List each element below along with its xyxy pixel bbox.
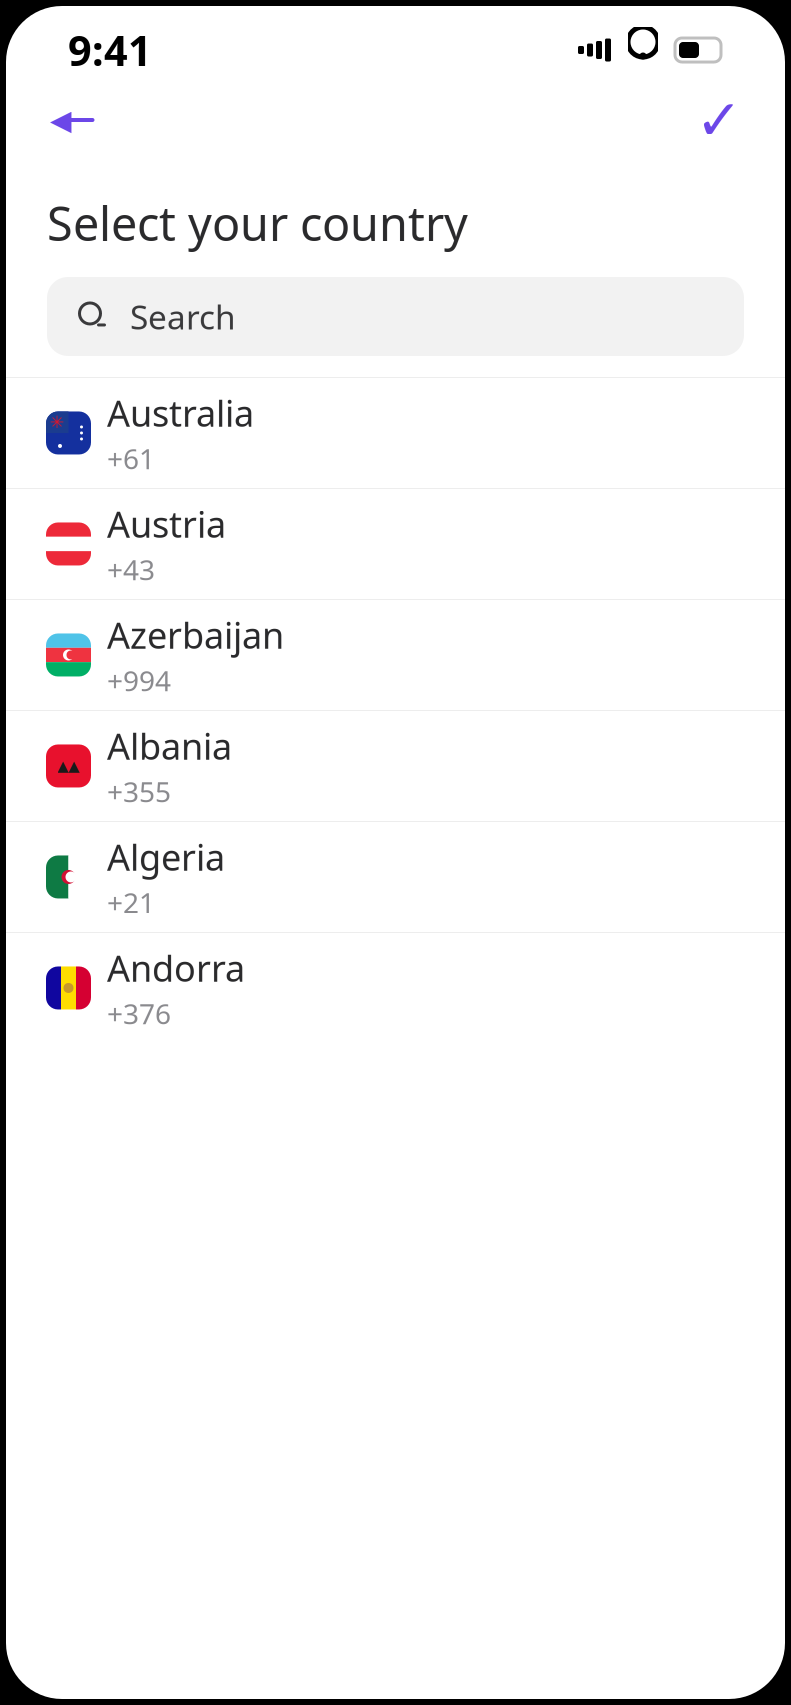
- button[interactable]: Confirm: [689, 94, 749, 146]
- staticText: Algeria: [107, 833, 225, 881]
- staticText: Andorra: [107, 944, 245, 992]
- button[interactable]: Austria: [6, 489, 785, 600]
- button[interactable]: ✳: [6, 378, 785, 489]
- button[interactable]: Back: [42, 94, 106, 146]
- staticText: ✳: [50, 412, 65, 432]
- staticText: Austria: [107, 500, 226, 548]
- staticText: Azerbaijan: [107, 611, 284, 659]
- staticText: +61: [107, 440, 155, 477]
- button[interactable]: Algeria: [6, 822, 785, 933]
- button[interactable]: Azerbaijan: [6, 600, 785, 711]
- staticText: +355: [107, 773, 171, 810]
- staticText: Search: [130, 294, 236, 339]
- staticText: Albania: [107, 722, 232, 770]
- staticText: ✓: [695, 88, 742, 152]
- staticText: ▲▲: [57, 758, 79, 774]
- staticText: +43: [107, 551, 155, 588]
- staticText: Select your country: [47, 192, 468, 254]
- button[interactable]: Search: [47, 277, 744, 356]
- staticText: Australia: [107, 389, 254, 437]
- button[interactable]: Andorra: [6, 933, 785, 1044]
- staticText: +994: [107, 662, 171, 699]
- button[interactable]: ▲▲: [6, 711, 785, 822]
- staticText: +376: [107, 995, 171, 1032]
- staticText: 9:41: [68, 23, 152, 77]
- staticText: +21: [107, 884, 155, 921]
- staticText: ◀: [50, 104, 72, 136]
